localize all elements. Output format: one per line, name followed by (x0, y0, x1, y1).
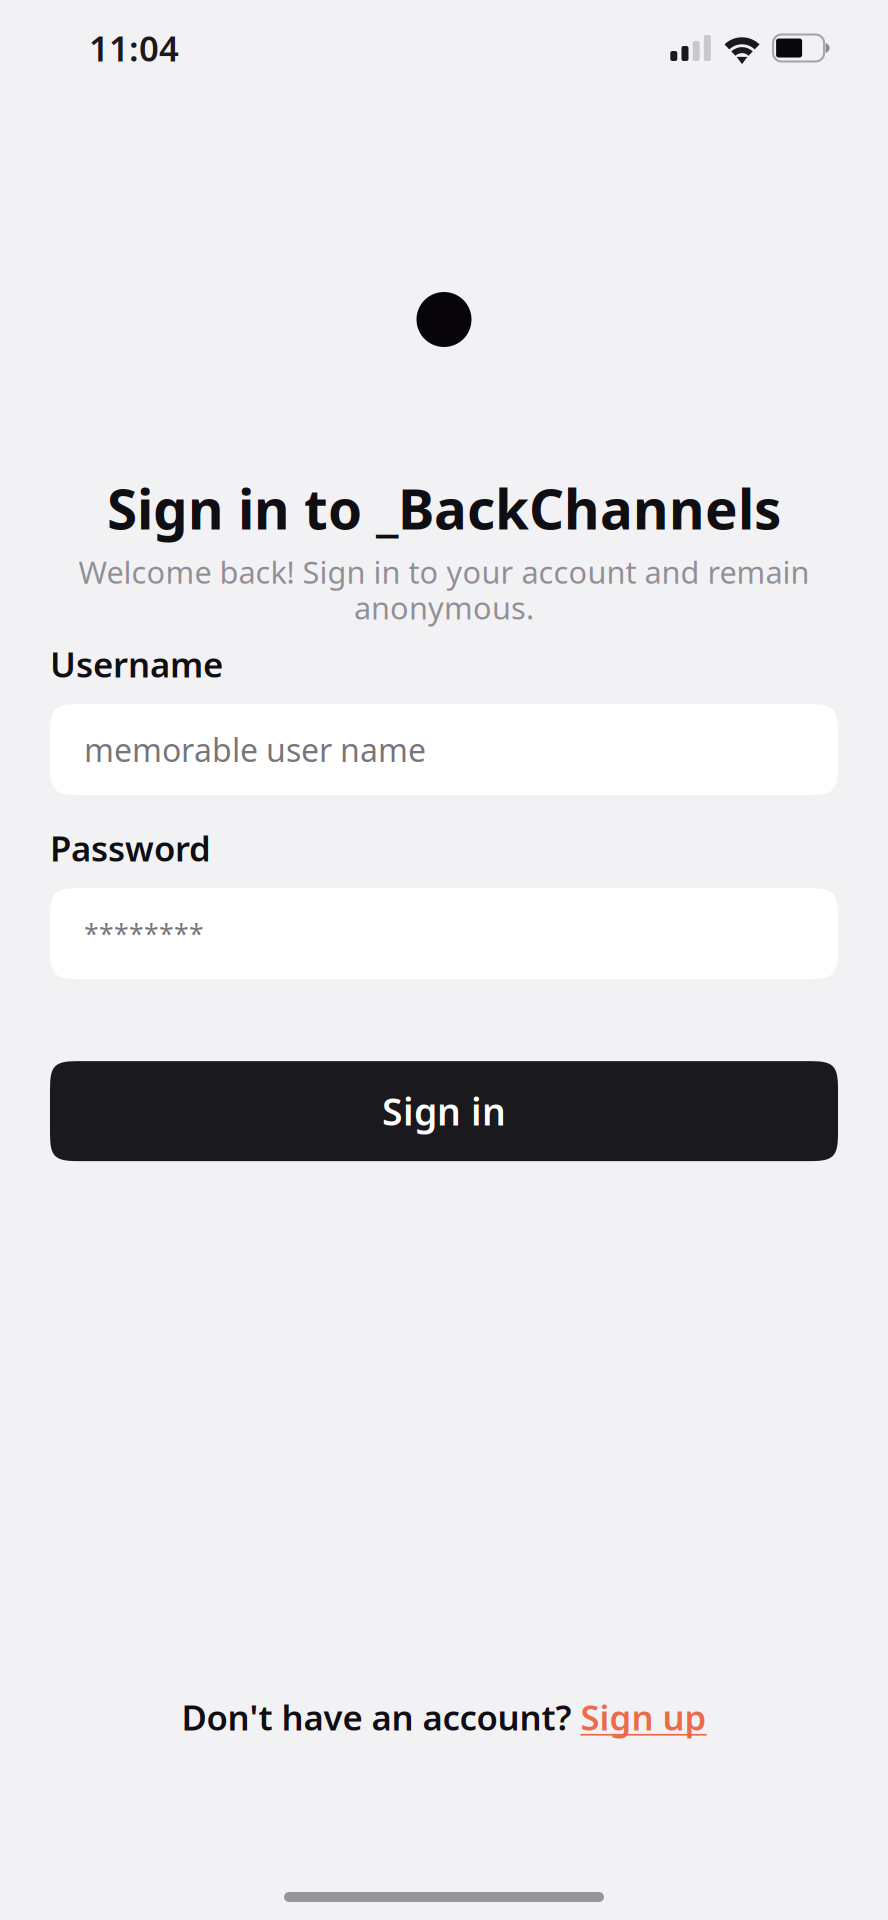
staticText: memorable user name (84, 728, 426, 771)
staticText: Sign in (382, 1086, 506, 1136)
staticText: Don't have an account? (181, 1694, 580, 1740)
staticText: Username (50, 641, 223, 687)
button[interactable]: Sign in (50, 1061, 838, 1161)
button[interactable]: Sign up (580, 1694, 706, 1740)
staticText: Sign in to _BackChannels (107, 472, 781, 545)
button[interactable]: Password (50, 888, 838, 979)
staticText: 11:04 (89, 25, 179, 71)
staticText: Sign up (580, 1694, 706, 1740)
button[interactable]: Username (50, 704, 838, 795)
staticText: anonymous. (354, 587, 534, 628)
staticText: Password (50, 825, 211, 871)
staticText: Welcome back! Sign in to your account an… (78, 552, 809, 592)
staticText: ******** (84, 916, 204, 951)
